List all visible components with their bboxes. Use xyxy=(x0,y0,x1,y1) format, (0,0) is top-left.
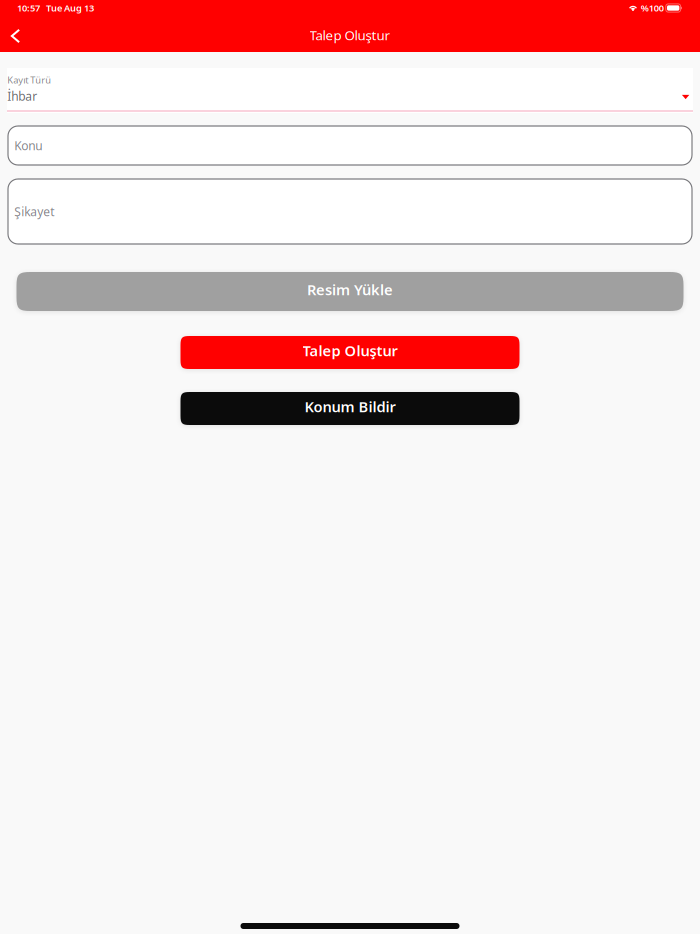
staticText: Konum Bildir xyxy=(304,397,395,416)
staticText: Talep Oluştur xyxy=(309,26,390,44)
staticText: Talep Oluştur xyxy=(302,341,397,360)
staticText: İhbar xyxy=(7,88,37,104)
button[interactable]: Konu xyxy=(8,126,692,165)
button[interactable]: Back xyxy=(0,14,31,54)
button[interactable]: Şikayet xyxy=(8,179,692,244)
staticText: Şikayet xyxy=(14,203,54,219)
staticText: Kayıt Türü xyxy=(7,74,51,86)
button[interactable]: Resim Yükle xyxy=(16,272,683,311)
staticText: 10:57 xyxy=(17,2,40,14)
staticText: Tue Aug 13 xyxy=(40,2,94,14)
button[interactable]: Konum Bildir xyxy=(180,392,519,425)
staticText: Konu xyxy=(14,137,42,153)
button[interactable]: Talep Oluştur xyxy=(180,336,519,369)
staticText: %100 xyxy=(639,2,666,14)
staticText: Resim Yükle xyxy=(307,280,393,299)
button[interactable]: Kayıt Türü xyxy=(7,68,693,113)
